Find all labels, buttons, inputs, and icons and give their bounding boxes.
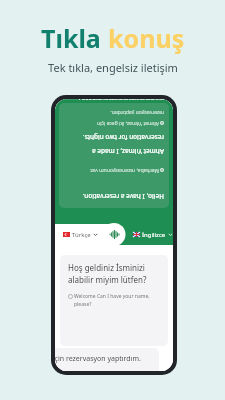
staticText: İsminizi alabilir miyim lütfen? [95,99,164,100]
staticText: n I have your name, please? [78,99,164,100]
staticText: Welcome Can I have your name, please? [74,293,160,308]
staticText: Türkçe [72,231,91,239]
button[interactable]: n I have your name, please? [59,99,169,100]
staticText: Hello, I have a reservation. [82,192,164,201]
staticText: konuş [108,21,185,55]
staticText: İngilizce [142,231,166,239]
button[interactable]: Konuş [103,223,126,246]
staticText: reservation for two nights. [82,133,164,142]
staticText: Tek tıkla, engelsiz iletişim [48,60,178,75]
staticText: Hoş geldiniz İsminizi alabilir miyim lüt… [68,262,160,286]
staticText: Ahmet Yılmaz, I made a [92,147,164,156]
staticText: Merhaba, rezervasyonum var. [89,167,159,174]
button[interactable]: Türkçe [63,225,98,244]
button[interactable]: e için rezervasyon yaptırdım. [55,348,159,371]
staticText: e için rezervasyon yaptırdım. [55,354,141,364]
button[interactable]: İngilizce [133,225,173,244]
button[interactable]: Hoş geldiniz İsminizi alabilir miyim lüt… [60,255,168,346]
button[interactable]: Hello, I have a reservation. [59,103,169,208]
staticText: rezervasyon yaptırdım. [110,109,164,116]
staticText: Ahmet Yılmaz, iki gece için [97,120,159,127]
staticText: Tıkla [41,21,108,55]
